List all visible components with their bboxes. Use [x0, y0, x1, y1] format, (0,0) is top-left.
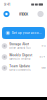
staticText: 8:04: [39, 55, 45, 58]
staticText: Storage Alert: [9, 42, 29, 46]
staticText: 9:12: [41, 44, 45, 47]
staticText: Mon: [41, 66, 45, 69]
staticText: Set up your account: [12, 31, 41, 35]
staticText: Weekly Digest: [9, 53, 32, 57]
staticText: 9:41: [4, 3, 10, 6]
staticText: New comments: [9, 68, 30, 72]
staticText: Drive almost full: [9, 46, 31, 50]
staticText: Inbox: [19, 12, 28, 16]
button[interactable]: Weekly Digest: [0, 51, 47, 62]
button[interactable]: Team Update: [0, 62, 47, 73]
button[interactable]: Account: [3, 10, 10, 17]
button[interactable]: Storage Alert: [0, 40, 47, 51]
button[interactable]: Search: [37, 10, 44, 17]
button[interactable]: Set up your account: [2, 27, 45, 39]
staticText: Team Update: [9, 64, 30, 68]
staticText: Week in review: [9, 57, 30, 61]
